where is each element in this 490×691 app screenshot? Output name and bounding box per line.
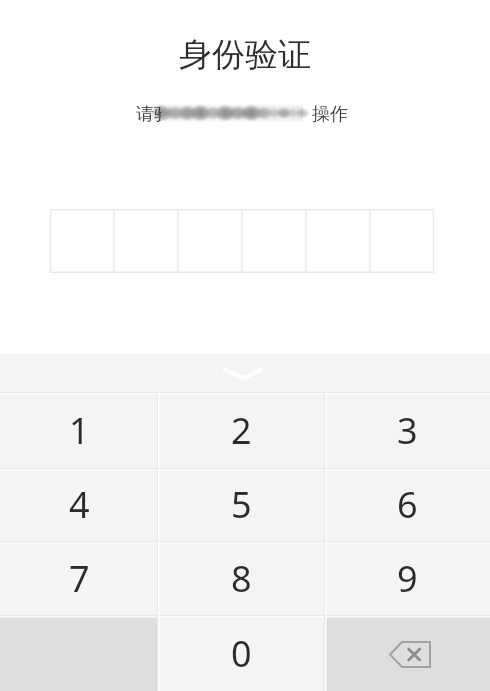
- staticText: 2: [231, 406, 252, 455]
- staticText: 5: [231, 480, 252, 529]
- staticText: 6: [397, 480, 418, 529]
- button[interactable]: 1: [0, 392, 158, 468]
- staticText: 7: [69, 554, 90, 603]
- staticText: 8: [231, 554, 252, 603]
- staticText: 请验: [136, 103, 172, 126]
- staticText: 0: [231, 629, 252, 678]
- button[interactable]: Verification code input: [50, 209, 434, 273]
- button[interactable]: Blank key: [0, 615, 158, 691]
- button[interactable]: 2: [158, 392, 325, 468]
- button[interactable]: 4: [0, 468, 158, 541]
- staticText: 9: [397, 554, 418, 603]
- button[interactable]: 3: [325, 392, 490, 468]
- button[interactable]: 8: [158, 541, 325, 615]
- button[interactable]: 6: [325, 468, 490, 541]
- staticText: 4: [69, 480, 90, 529]
- staticText: 身份验证: [0, 34, 490, 76]
- button[interactable]: Backspace: [325, 615, 490, 691]
- staticText: 1: [69, 406, 90, 455]
- button[interactable]: 5: [158, 468, 325, 541]
- staticText: 操作: [312, 103, 348, 126]
- button[interactable]: 7: [0, 541, 158, 615]
- staticText: 3: [397, 406, 418, 455]
- button[interactable]: 9: [325, 541, 490, 615]
- button[interactable]: 0: [158, 615, 325, 691]
